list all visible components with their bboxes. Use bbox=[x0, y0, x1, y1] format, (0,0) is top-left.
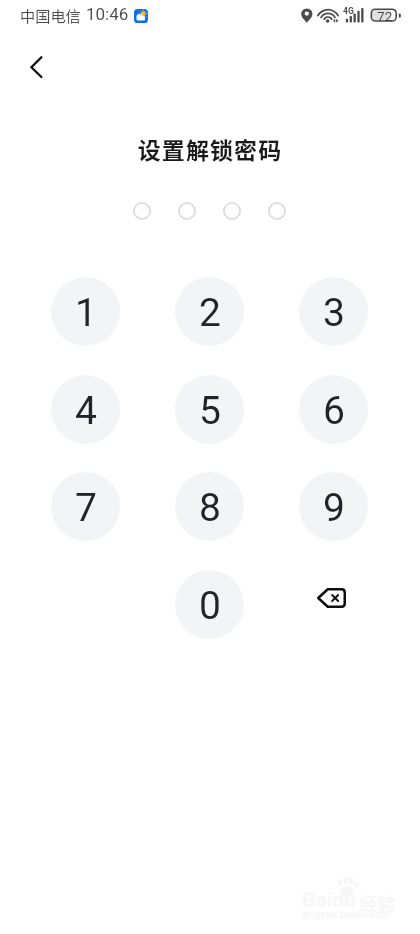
staticText: 7 bbox=[75, 485, 97, 531]
staticText: 经验 bbox=[359, 890, 395, 916]
staticText: 4G bbox=[343, 6, 354, 16]
staticText: Baidu bbox=[302, 888, 356, 913]
staticText: 4 bbox=[75, 388, 97, 434]
staticText: 0 bbox=[199, 583, 221, 629]
button[interactable]: 9 bbox=[299, 472, 368, 541]
staticText: 2 bbox=[199, 290, 221, 336]
button[interactable]: 1 bbox=[51, 277, 120, 346]
staticText: 72 bbox=[377, 8, 393, 24]
button[interactable]: Delete bbox=[299, 570, 368, 639]
button[interactable]: 7 bbox=[51, 472, 120, 541]
button[interactable]: 0 bbox=[175, 570, 244, 639]
staticText: 5 bbox=[199, 388, 221, 434]
staticText: 8 bbox=[199, 485, 221, 531]
staticText: jingyan.baidu.com bbox=[303, 908, 390, 920]
button[interactable]: 4 bbox=[51, 375, 120, 444]
staticText: 3 bbox=[323, 290, 345, 336]
button[interactable]: Back bbox=[10, 44, 56, 90]
button[interactable]: 5 bbox=[175, 375, 244, 444]
button[interactable]: 6 bbox=[299, 375, 368, 444]
staticText: 6 bbox=[323, 388, 345, 434]
button[interactable]: 8 bbox=[175, 472, 244, 541]
staticText: 9 bbox=[323, 485, 345, 531]
staticText: 设置解锁密码 bbox=[0, 132, 420, 165]
button[interactable]: 2 bbox=[175, 277, 244, 346]
staticText: 10:46 bbox=[86, 4, 129, 24]
staticText: 中国电信 bbox=[20, 4, 81, 26]
staticText: 1 bbox=[75, 290, 97, 336]
button[interactable]: 3 bbox=[299, 277, 368, 346]
